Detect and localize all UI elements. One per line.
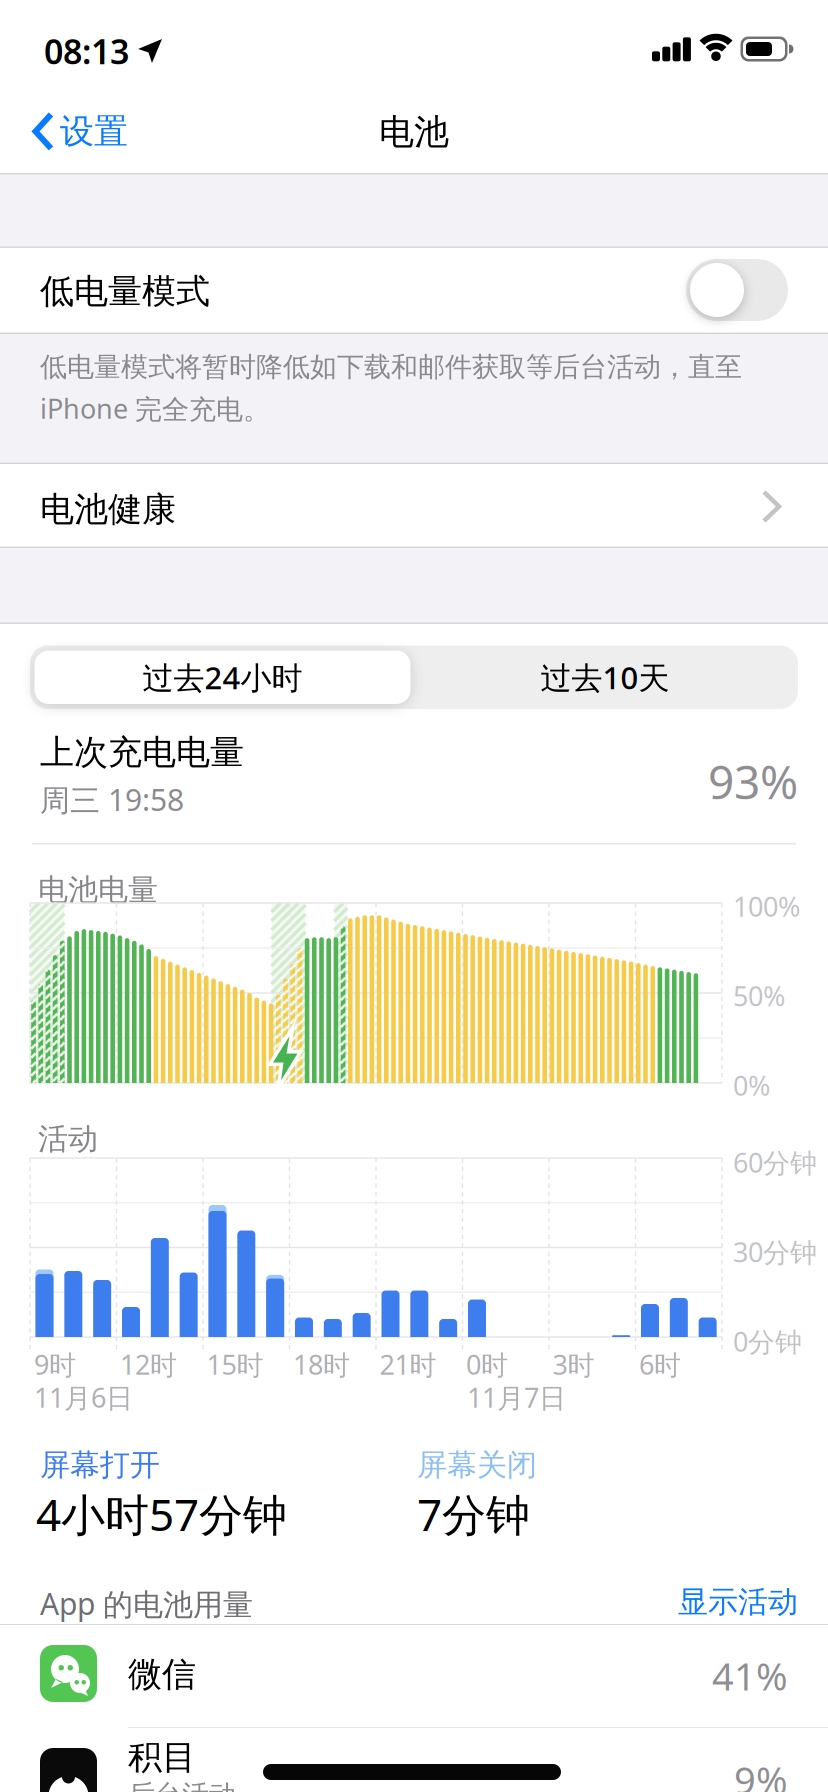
staticText: 电池电量 — [38, 871, 158, 909]
button[interactable]: 积目 — [0, 1728, 828, 1792]
staticText: 15时 — [206, 1346, 263, 1383]
button[interactable]: 过去10天 — [417, 650, 793, 704]
staticText: 屏幕打开 — [40, 1446, 160, 1484]
staticText: 低电量模式将暂时降低如下载和邮件获取等后台活动，直至 — [40, 350, 742, 384]
button[interactable]: 设置 — [32, 110, 128, 153]
staticText: 3时 — [552, 1346, 594, 1383]
staticText: 21时 — [379, 1346, 436, 1383]
staticText: iPhone 完全充电。 — [40, 390, 270, 427]
staticText: 6时 — [639, 1346, 681, 1383]
staticText: 60分钟 — [733, 1144, 817, 1181]
staticText: 41% — [712, 1650, 788, 1702]
button[interactable]: 电池健康 — [0, 464, 828, 1792]
staticText: 低电量模式 — [40, 270, 210, 313]
staticText: 08:13 — [44, 28, 129, 74]
staticText: 93% — [708, 750, 798, 813]
staticText: 12时 — [120, 1346, 177, 1383]
staticText: 屏幕关闭 — [417, 1446, 537, 1484]
staticText: 0时 — [466, 1346, 508, 1383]
staticText: 过去10天 — [540, 656, 669, 698]
staticText: 9% — [734, 1754, 788, 1792]
staticText: 设置 — [60, 110, 128, 153]
staticText: 100% — [733, 888, 800, 925]
staticText: 电池健康 — [40, 488, 176, 531]
staticText: 积目 — [128, 1736, 196, 1779]
staticText: 30分钟 — [733, 1233, 817, 1270]
staticText: 11月7日 — [467, 1379, 566, 1416]
staticText: 0分钟 — [733, 1323, 802, 1360]
staticText: 上次充电电量 — [40, 731, 244, 774]
staticText: 0% — [733, 1067, 770, 1104]
staticText: 11月6日 — [34, 1379, 133, 1416]
staticText: 过去24小时 — [142, 656, 302, 698]
button[interactable]: 过去24小时 — [34, 650, 410, 704]
staticText: 微信 — [128, 1653, 196, 1696]
button[interactable] — [686, 259, 788, 321]
staticText: 后台活动 — [128, 1778, 236, 1792]
staticText: 电池 — [379, 110, 449, 154]
staticText: 4小时57分钟 — [36, 1484, 287, 1544]
staticText: 周三 19:58 — [40, 779, 184, 820]
staticText: 显示活动 — [678, 1583, 798, 1621]
staticText: 50% — [733, 977, 785, 1014]
staticText: App 的电池用量 — [40, 1583, 253, 1624]
staticText: 18时 — [293, 1346, 350, 1383]
staticText: 7分钟 — [417, 1484, 530, 1544]
button[interactable]: 微信 — [0, 1625, 828, 1728]
staticText: 9时 — [34, 1346, 76, 1383]
staticText: 活动 — [38, 1120, 98, 1158]
